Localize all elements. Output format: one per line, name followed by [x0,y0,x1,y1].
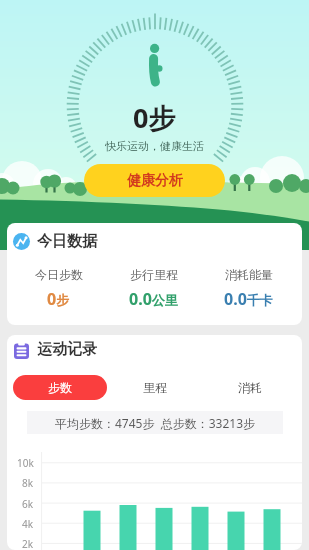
staticText: 平均步数：4745步 总步数：33213步 [55,415,256,431]
staticText: 8k [22,476,34,490]
staticText: 10k [17,456,34,470]
button[interactable]: 健康分析 [84,164,225,197]
staticText: 4k [22,517,34,531]
staticText: 步数 [48,380,72,395]
button[interactable]: 步数 [13,375,107,400]
staticText: 今日数据 [37,232,97,251]
staticText: 0步 [47,288,70,310]
button[interactable]: 今日数据 [13,232,97,251]
button[interactable]: 消耗 [202,375,297,400]
staticText: 今日步数 [35,267,83,282]
staticText: 快乐运动，健康生活 [105,139,204,153]
staticText: 消耗 [238,380,262,395]
button[interactable]: 里程 [107,375,202,400]
staticText: 消耗能量 [225,267,273,282]
staticText: 运动记录 [37,340,97,359]
staticText: 0.0公里 [129,288,178,310]
staticText: 0步 [133,99,176,136]
staticText: 6k [22,497,34,511]
button[interactable]: 运动记录 [14,340,97,359]
staticText: 2k [22,537,34,550]
staticText: 步行里程 [130,267,178,282]
staticText: 健康分析 [127,172,183,190]
staticText: 0.0千卡 [224,288,273,310]
staticText: 里程 [143,380,167,395]
